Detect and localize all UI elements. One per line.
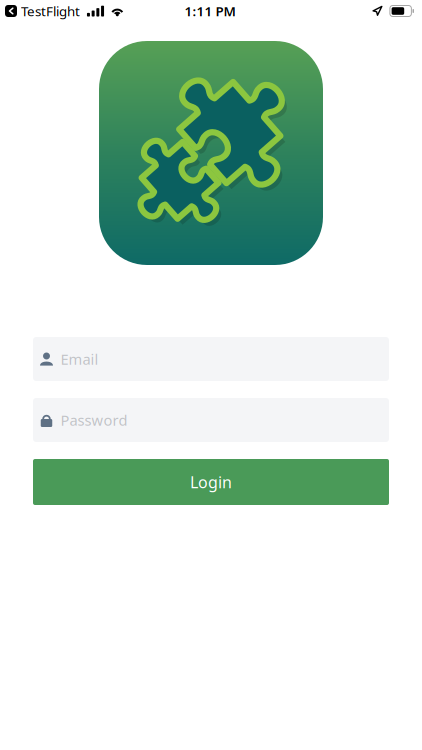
staticText: Password [60,410,127,430]
staticText: TestFlight [21,2,80,20]
staticText: 1:11 PM [184,2,235,20]
staticText: Login [190,471,232,493]
button[interactable]: Email [33,337,389,381]
button[interactable]: Password [33,398,389,442]
staticText: Email [60,349,98,369]
button[interactable]: Login [33,459,389,505]
button[interactable]: TestFlight [5,2,80,20]
